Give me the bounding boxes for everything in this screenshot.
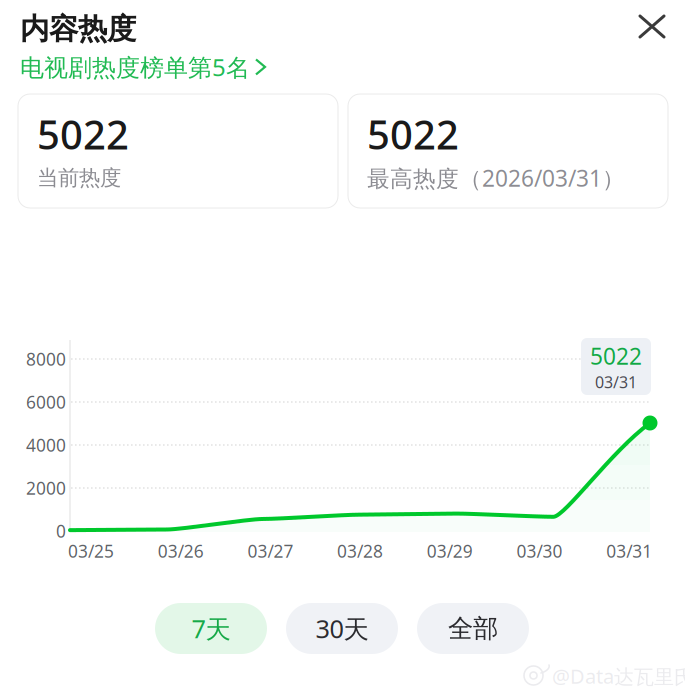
staticText: 0: [56, 519, 66, 542]
staticText: 6000: [26, 390, 66, 413]
staticText: 03/29: [427, 539, 473, 562]
button[interactable]: 30天: [286, 603, 398, 654]
button[interactable]: 电视剧热度榜单第5名: [20, 51, 265, 83]
staticText: 当前热度: [37, 165, 121, 191]
staticText: @Data达瓦里氏: [552, 663, 685, 689]
staticText: 03/26: [158, 539, 204, 562]
staticText: 03/25: [68, 539, 114, 562]
button[interactable]: 全部: [417, 603, 529, 654]
staticText: 7天: [191, 612, 230, 645]
staticText: 5022: [37, 107, 129, 160]
staticText: 电视剧热度榜单第5名: [20, 51, 250, 83]
staticText: 03/27: [247, 539, 293, 562]
staticText: 8000: [26, 347, 66, 370]
staticText: 最高热度（2026/03/31）: [367, 163, 625, 193]
staticText: 03/31: [606, 539, 652, 562]
staticText: 5022: [367, 107, 459, 160]
staticText: 2000: [26, 476, 66, 499]
staticText: 30天: [315, 612, 368, 645]
staticText: 03/31: [595, 371, 637, 393]
staticText: 03/30: [516, 539, 562, 562]
staticText: 5022: [590, 341, 642, 371]
staticText: 内容热度: [20, 11, 136, 47]
button[interactable]: 7天: [155, 603, 267, 654]
staticText: 4000: [26, 433, 66, 456]
button[interactable]: Close: [632, 8, 672, 45]
staticText: 全部: [448, 613, 498, 644]
staticText: 03/28: [337, 539, 383, 562]
